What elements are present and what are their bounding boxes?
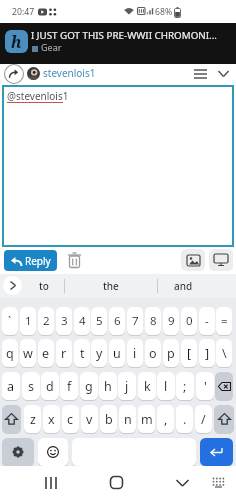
button[interactable]: 4: [74, 307, 90, 335]
button[interactable]: ;: [176, 372, 194, 400]
button[interactable]: -: [199, 307, 215, 335]
button[interactable]: q: [2, 339, 18, 367]
staticText: @stevenlois1: [7, 89, 69, 103]
button[interactable]: \: [216, 339, 232, 367]
button[interactable]: [2, 405, 21, 433]
button[interactable]: [176, 479, 189, 487]
staticText: p: [167, 345, 175, 362]
button[interactable]: 5: [91, 307, 107, 335]
button[interactable]: 1: [20, 307, 36, 335]
button[interactable]: [209, 249, 233, 271]
button[interactable]: [110, 476, 123, 489]
staticText: Reply: [25, 254, 51, 268]
button[interactable]: [4, 64, 24, 84]
staticText: =: [221, 313, 228, 329]
staticText: 7: [132, 313, 139, 329]
staticText: 9: [168, 313, 175, 329]
button[interactable]: c: [62, 405, 79, 433]
staticText: 1: [25, 313, 32, 329]
button[interactable]: ': [196, 372, 214, 400]
staticText: ,: [164, 411, 168, 428]
staticText: .: [183, 411, 187, 428]
button[interactable]: b: [100, 405, 117, 433]
button[interactable]: i: [127, 339, 143, 367]
button[interactable]: d: [41, 372, 59, 400]
button[interactable]: [3, 276, 22, 295]
staticText: 0: [186, 313, 193, 329]
button[interactable]: z: [24, 405, 41, 433]
button[interactable]: 8: [145, 307, 161, 335]
button[interactable]: a: [2, 372, 20, 400]
button[interactable]: g: [80, 372, 98, 400]
staticText: 4: [79, 313, 86, 329]
button[interactable]: [181, 249, 205, 271]
staticText: ]: [205, 345, 210, 362]
staticText: ': [204, 378, 207, 395]
button[interactable]: n: [119, 405, 136, 433]
staticText: 2: [43, 313, 50, 329]
staticText: 5: [96, 313, 103, 329]
button[interactable]: 9: [163, 307, 179, 335]
button[interactable]: =: [216, 307, 232, 335]
button[interactable]: ,: [157, 405, 174, 433]
button[interactable]: 6: [109, 307, 125, 335]
staticText: g: [85, 378, 93, 395]
button[interactable]: .: [176, 405, 193, 433]
button[interactable]: [200, 438, 233, 466]
button[interactable]: [194, 68, 207, 80]
button[interactable]: x: [43, 405, 60, 433]
button[interactable]: o: [145, 339, 161, 367]
button[interactable]: to: [24, 274, 64, 298]
button[interactable]: m: [138, 405, 155, 433]
button[interactable]: 3: [56, 307, 72, 335]
button[interactable]: h: [0, 23, 236, 64]
button[interactable]: [2, 438, 34, 466]
button[interactable]: the: [65, 274, 157, 298]
staticText: b: [105, 411, 113, 428]
button[interactable]: h: [99, 372, 117, 400]
button[interactable]: [218, 70, 229, 78]
button[interactable]: [45, 477, 58, 489]
button[interactable]: [: [181, 339, 197, 367]
staticText: q: [6, 345, 14, 362]
staticText: h: [11, 31, 22, 53]
button[interactable]: j: [118, 372, 136, 400]
button[interactable]: [68, 252, 81, 268]
staticText: `: [8, 313, 12, 329]
button[interactable]: [38, 438, 68, 466]
staticText: ;: [183, 378, 187, 395]
staticText: d: [46, 378, 54, 395]
button[interactable]: stevenlois1: [43, 66, 96, 80]
button[interactable]: t: [74, 339, 90, 367]
button[interactable]: k: [138, 372, 156, 400]
button[interactable]: @stevenlois1: [2, 85, 234, 247]
staticText: 68%: [155, 6, 173, 18]
button[interactable]: [212, 477, 225, 488]
button[interactable]: 0: [181, 307, 197, 335]
button[interactable]: ]: [199, 339, 215, 367]
button[interactable]: s: [22, 372, 40, 400]
button[interactable]: 7: [127, 307, 143, 335]
button[interactable]: 2: [38, 307, 54, 335]
staticText: k: [144, 378, 151, 395]
staticText: h: [104, 378, 112, 395]
button[interactable]: l: [157, 372, 175, 400]
button[interactable]: v: [81, 405, 98, 433]
button[interactable]: e: [38, 339, 54, 367]
button[interactable]: Reply: [4, 250, 57, 271]
button[interactable]: [214, 405, 234, 433]
staticText: l: [164, 378, 168, 395]
staticText: [: [187, 345, 192, 362]
button[interactable]: f: [60, 372, 78, 400]
button[interactable]: p: [163, 339, 179, 367]
staticText: 8: [150, 313, 157, 329]
button[interactable]: and: [158, 274, 208, 298]
button[interactable]: y: [91, 339, 107, 367]
button[interactable]: /: [195, 405, 212, 433]
button[interactable]: u: [109, 339, 125, 367]
button[interactable]: `: [2, 307, 18, 335]
button[interactable]: w: [20, 339, 36, 367]
button[interactable]: r: [56, 339, 72, 367]
button[interactable]: [215, 372, 233, 400]
